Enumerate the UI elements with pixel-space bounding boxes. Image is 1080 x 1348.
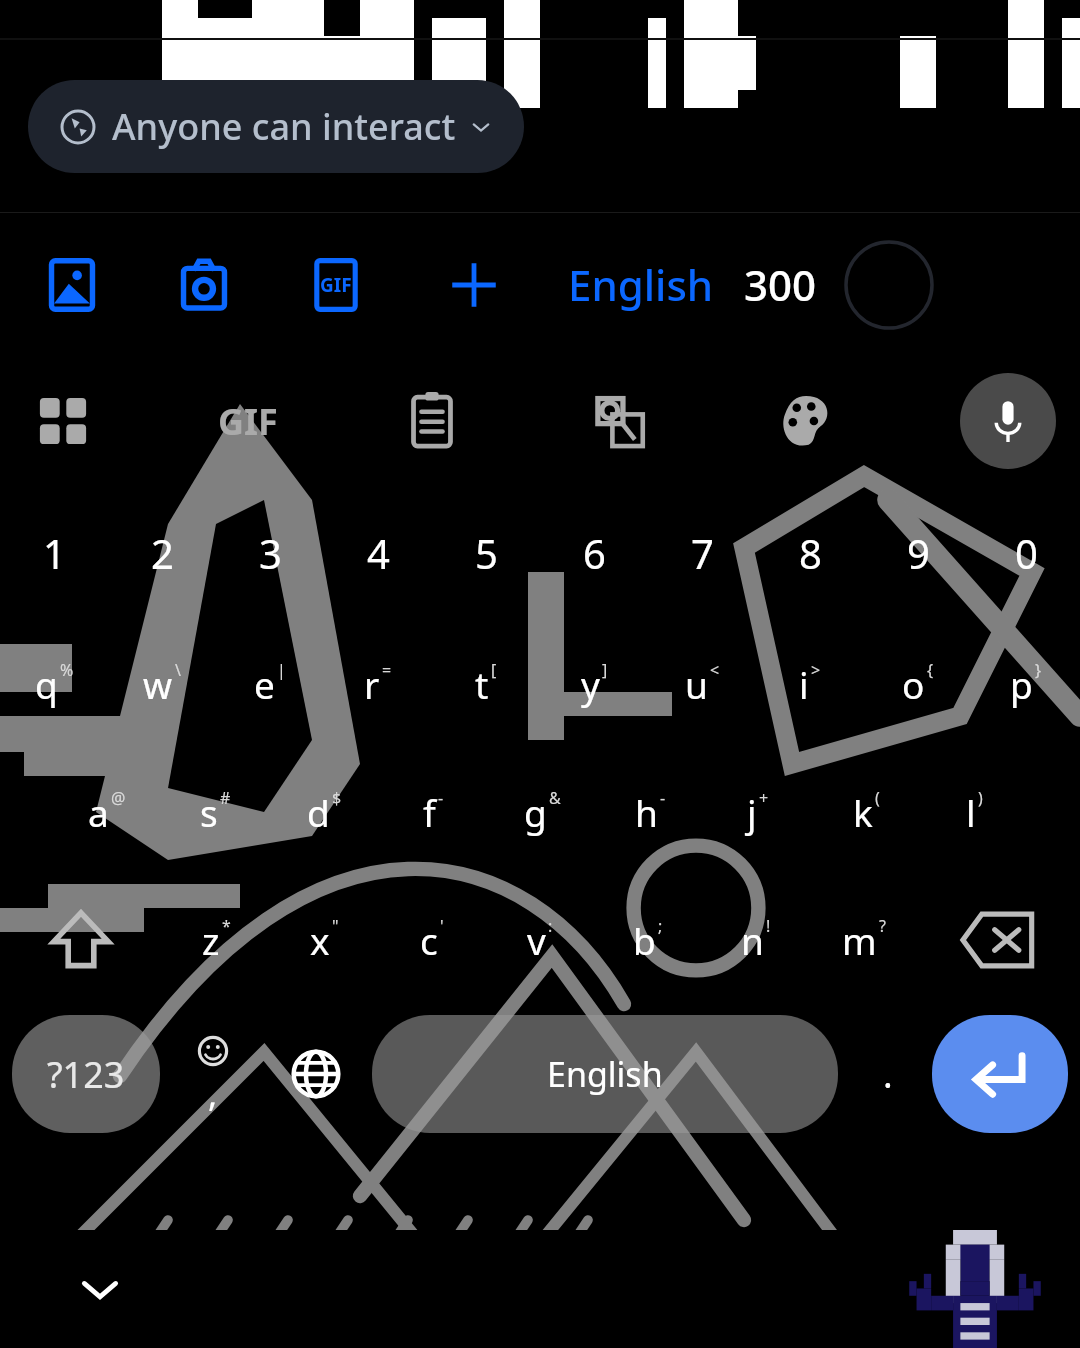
button[interactable]: w (108, 620, 216, 748)
button[interactable]: Camera (172, 253, 236, 317)
button[interactable]: Anyone can interact (28, 80, 524, 173)
staticText: h (635, 787, 658, 837)
button[interactable]: Translate (586, 388, 652, 454)
staticText: o (902, 659, 925, 709)
button[interactable]: b (594, 876, 702, 1004)
staticText: k (853, 787, 873, 837)
button[interactable]: 4 (324, 486, 432, 620)
button[interactable]: f (379, 748, 488, 876)
button[interactable]: GIF (218, 397, 278, 446)
staticText: $ (332, 787, 342, 809)
button[interactable]: u (648, 620, 756, 748)
button[interactable]: Backspace (918, 876, 1080, 1004)
staticText: , (208, 1071, 218, 1117)
button[interactable]: 0 (972, 486, 1080, 620)
button[interactable]: 300 (744, 256, 817, 313)
button[interactable]: 6 (540, 486, 648, 620)
button[interactable]: m (810, 876, 918, 1004)
staticText: j (747, 787, 757, 837)
button[interactable]: Period (844, 1004, 932, 1144)
button[interactable]: Hide keyboard (62, 1251, 138, 1327)
staticText: p (1010, 659, 1033, 709)
button[interactable]: GIF (304, 253, 368, 317)
button[interactable]: z (162, 876, 270, 1004)
staticText: 0 (1015, 526, 1038, 580)
staticText: 7 (691, 526, 714, 580)
button[interactable]: q (0, 620, 108, 748)
staticText: ] (602, 659, 608, 681)
staticText: ' (440, 915, 444, 937)
button[interactable]: x (270, 876, 378, 1004)
button[interactable]: 7 (648, 486, 756, 620)
staticText: > (811, 659, 821, 681)
staticText: z (202, 915, 220, 965)
button[interactable]: ?123 (12, 1015, 160, 1133)
staticText: s (200, 787, 218, 837)
button[interactable]: English (372, 1015, 838, 1133)
button[interactable]: e (216, 620, 324, 748)
button[interactable]: Voice input (960, 373, 1056, 469)
staticText: + (759, 787, 769, 809)
button[interactable]: Insert image (40, 253, 104, 317)
button[interactable]: o (864, 620, 972, 748)
staticText: q (35, 659, 58, 709)
button[interactable]: Change language (266, 1004, 366, 1144)
button[interactable]: v (486, 876, 594, 1004)
button[interactable]: h (596, 748, 704, 876)
staticText: ?123 (47, 1050, 125, 1099)
button[interactable]: y (540, 620, 648, 748)
staticText: . (883, 1050, 893, 1099)
button[interactable]: k (812, 748, 920, 876)
staticText: = (382, 659, 392, 681)
button[interactable]: c (378, 876, 486, 1004)
button[interactable]: More options (30, 388, 96, 454)
button[interactable]: Shift (0, 876, 162, 1004)
button[interactable]: 8 (756, 486, 864, 620)
button[interactable]: t (432, 620, 540, 748)
staticText: y (581, 659, 600, 709)
button[interactable]: Add (442, 253, 506, 317)
staticText: 3 (259, 526, 282, 580)
button[interactable]: 9 (864, 486, 972, 620)
staticText: " (332, 915, 339, 937)
button[interactable]: 3 (216, 486, 324, 620)
staticText: f (423, 787, 436, 837)
button[interactable]: Comma (160, 1004, 266, 1144)
button[interactable]: Theme (773, 388, 839, 454)
button[interactable]: d (270, 748, 379, 876)
button[interactable]: n (702, 876, 810, 1004)
staticText: 8 (799, 526, 822, 580)
button[interactable]: 5 (432, 486, 540, 620)
staticText: 2 (151, 526, 174, 580)
staticText: ( (875, 787, 880, 809)
staticText: 5 (475, 526, 498, 580)
button[interactable]: s (161, 748, 270, 876)
button[interactable]: a (52, 748, 161, 876)
button[interactable]: j (704, 748, 812, 876)
staticText: : (548, 915, 553, 937)
button[interactable]: 2 (108, 486, 216, 620)
button[interactable]: p (972, 620, 1080, 748)
button[interactable]: Clipboard (399, 388, 465, 454)
button[interactable]: English (568, 256, 714, 313)
button[interactable]: g (488, 748, 596, 876)
button[interactable]: l (920, 748, 1028, 876)
staticText: GIF (320, 272, 352, 298)
staticText: d (307, 787, 330, 837)
button[interactable]: r (324, 620, 432, 748)
button[interactable]: Send (843, 239, 935, 331)
staticText: @ (111, 787, 126, 809)
staticText: 300 (744, 256, 817, 313)
button[interactable]: 1 (0, 486, 108, 620)
staticText: w (143, 659, 173, 709)
staticText: ; (658, 915, 663, 937)
staticText: 9 (907, 526, 930, 580)
staticText: u (685, 659, 708, 709)
staticText: ? (879, 915, 886, 937)
staticText: n (741, 915, 764, 965)
staticText: % (60, 659, 74, 681)
button[interactable]: i (756, 620, 864, 748)
staticText: m (842, 915, 877, 965)
staticText: 4 (367, 526, 390, 580)
button[interactable]: Enter (932, 1015, 1068, 1133)
